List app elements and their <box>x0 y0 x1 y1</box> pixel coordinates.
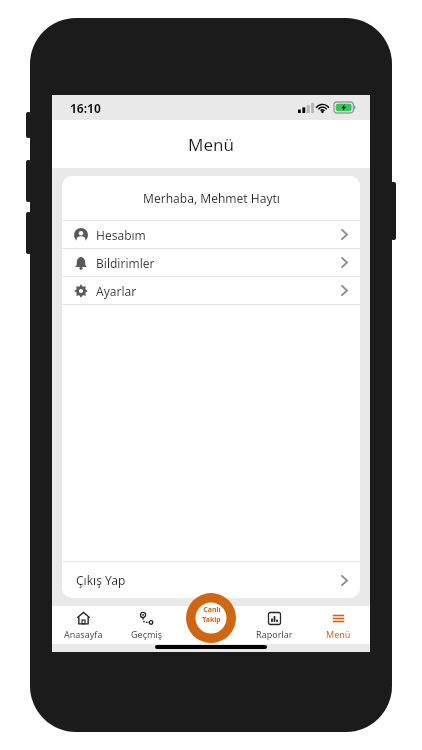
button[interactable]: Hesabım <box>62 221 360 248</box>
staticText: Menü <box>326 628 351 640</box>
button[interactable]: Geçmiş <box>115 606 178 644</box>
button[interactable]: Anasayfa <box>52 606 115 644</box>
button[interactable]: Çıkış Yap <box>62 562 360 598</box>
staticText: Merhaba, Mehmet Haytı <box>143 190 280 206</box>
staticText: Raporlar <box>256 628 293 640</box>
staticText: Anasayfa <box>64 628 103 640</box>
staticText: Geçmiş <box>131 628 162 640</box>
button[interactable]: Canlı Takip <box>186 593 236 639</box>
staticText: Takip <box>202 615 221 625</box>
staticText: Bildirimler <box>96 255 155 271</box>
button[interactable]: Bildirimler <box>62 249 360 276</box>
staticText: Hesabım <box>96 227 146 243</box>
staticText: Ayarlar <box>96 283 137 299</box>
staticText: 16:10 <box>70 100 101 116</box>
staticText: Menü <box>188 133 235 156</box>
button[interactable]: Raporlar <box>242 606 306 644</box>
button[interactable]: Ayarlar <box>62 277 360 304</box>
staticText: Çıkış Yap <box>76 572 126 588</box>
button[interactable]: Menü <box>306 606 370 644</box>
staticText: Canlı <box>203 605 221 615</box>
